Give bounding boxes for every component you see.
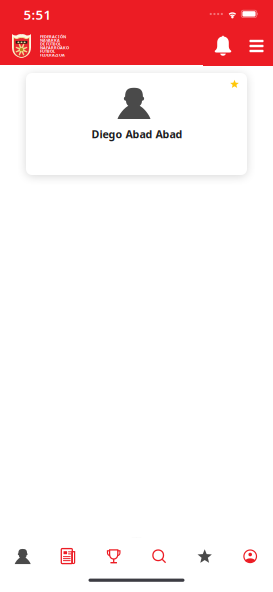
button[interactable]: Notifications	[203, 26, 243, 66]
staticText: FEDERAZIOA	[40, 52, 65, 58]
button[interactable]: Profile	[0, 537, 45, 575]
button[interactable]: Menu	[237, 26, 273, 66]
button[interactable]: Account	[227, 537, 273, 575]
staticText: Diego Abad Abad	[91, 127, 182, 141]
staticText: 5:51	[23, 6, 51, 23]
button[interactable]: Competitions	[91, 537, 136, 575]
staticText: FEDERACIÓN	[40, 34, 66, 39]
staticText: NAVARRA	[40, 38, 60, 43]
staticText: FUTBOL	[40, 49, 55, 54]
staticText: DE FÚTBOL	[40, 41, 61, 47]
button[interactable]: News	[45, 537, 91, 575]
button[interactable]: Search	[136, 537, 182, 575]
button[interactable]: Diego Abad Abad	[26, 73, 247, 175]
staticText: NAFARROAKO	[40, 45, 69, 50]
button[interactable]: Favourites	[182, 537, 227, 575]
